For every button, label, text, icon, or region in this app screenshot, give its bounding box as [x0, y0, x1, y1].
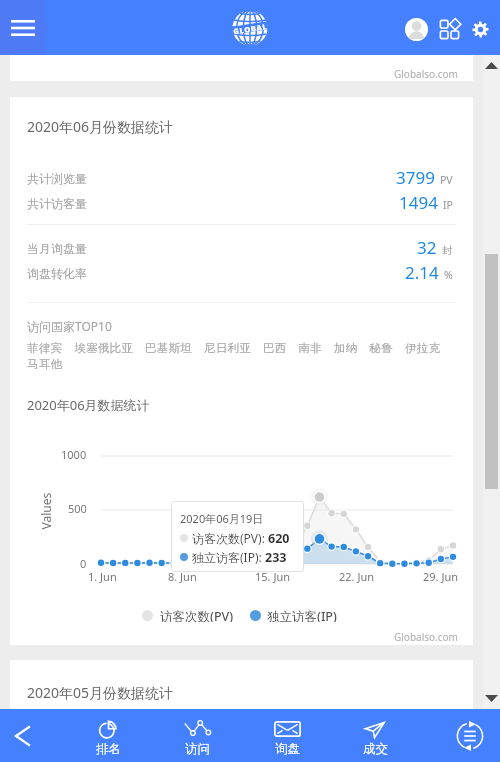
staticText: 32 [417, 236, 437, 259]
staticText: 0 [80, 556, 87, 571]
staticText: 620 [268, 530, 290, 545]
staticText: 2020年05月份数据统计 [27, 683, 174, 702]
staticText: 2.14 [405, 261, 439, 284]
staticText: 1000 [61, 447, 87, 462]
button[interactable]: Scroll [483, 55, 500, 709]
staticText: 独立访客(IP): [192, 549, 265, 564]
staticText: 菲律宾 埃塞俄比亚 巴基斯坦 尼日利亚 巴西 南非 加纳 秘鲁 伊拉克 马耳他 [27, 340, 451, 372]
button[interactable]: Apps [440, 20, 459, 39]
staticText: 22. Jun [339, 569, 374, 584]
button[interactable]: Back [0, 709, 44, 762]
staticText: 访问国家TOP10 [27, 318, 112, 334]
staticText: 2020年06月19日 [180, 511, 264, 526]
staticText: IP [443, 198, 453, 212]
staticText: PV [440, 173, 453, 187]
staticText: Globalso.com [394, 67, 458, 81]
staticText: 2020年06月份数据统计 [27, 117, 174, 136]
staticText: % [444, 268, 453, 282]
staticText: 共计访客量 [27, 196, 87, 211]
staticText: 1494 [399, 191, 438, 214]
button[interactable]: Refresh [445, 711, 495, 761]
staticText: 访客次数(PV): [192, 530, 268, 545]
staticText: Values [37, 492, 53, 529]
staticText: 3799 [396, 166, 435, 189]
staticText: 询盘转化率 [27, 266, 87, 281]
staticText: 8. Jun [168, 569, 197, 584]
staticText: 封 [442, 244, 453, 257]
staticText: 500 [68, 501, 87, 516]
button[interactable]: 排名 [68, 709, 148, 762]
staticText: 访客次数(PV) [160, 608, 234, 622]
staticText: 排名 [96, 741, 121, 757]
staticText: GLOBAL [233, 21, 268, 35]
staticText: 15. Jun [255, 569, 290, 584]
button[interactable]: Settings [472, 21, 489, 38]
staticText: 233 [265, 549, 287, 564]
staticText: 1. Jun [88, 569, 117, 584]
button[interactable]: 询盘 [247, 709, 327, 762]
staticText: 成交 [363, 741, 388, 757]
staticText: Globalso.com [394, 630, 458, 644]
staticText: 2020年06月数据统计 [27, 396, 150, 414]
button[interactable]: Menu [0, 0, 46, 55]
staticText: 共计浏览量 [27, 171, 87, 186]
staticText: 29. Jun [423, 569, 458, 584]
button[interactable]: 成交 [335, 709, 415, 762]
staticText: 询盘 [275, 741, 300, 757]
staticText: 独立访客(IP) [267, 608, 337, 622]
staticText: 访问 [185, 741, 210, 757]
button[interactable]: 访问 [157, 709, 237, 762]
staticText: 当月询盘量 [27, 241, 87, 256]
button[interactable]: Profile [405, 18, 428, 41]
